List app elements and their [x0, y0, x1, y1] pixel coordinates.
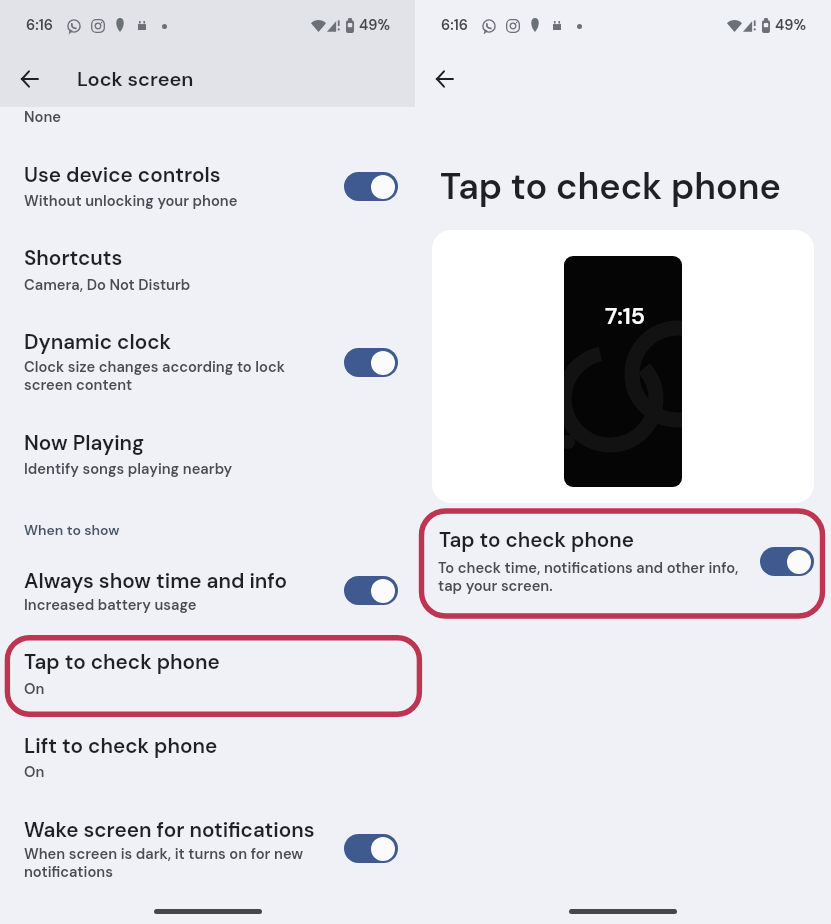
- button[interactable]: Shortcuts: [0, 232, 415, 298]
- staticText: On: [24, 762, 45, 781]
- staticText: On: [24, 679, 45, 698]
- button[interactable]: Lift to check phone: [0, 720, 415, 786]
- button[interactable]: Tap to check phone: [418, 508, 827, 620]
- staticText: 6:16: [441, 16, 468, 35]
- button[interactable]: Tap to check phone: [0, 636, 415, 702]
- staticText: When screen is dark, it turns on for new…: [24, 844, 304, 881]
- button[interactable]: Toggle setting: [344, 834, 398, 863]
- button[interactable]: Dynamic clock: [0, 316, 415, 400]
- staticText: Without unlocking your phone: [24, 191, 238, 210]
- staticText: None: [24, 107, 61, 126]
- staticText: Tap to check phone: [24, 648, 220, 675]
- staticText: Camera, Do Not Disturb: [24, 275, 191, 294]
- button[interactable]: Now Playing: [0, 417, 415, 483]
- button[interactable]: Toggle setting: [760, 547, 814, 576]
- staticText: 49%: [359, 16, 391, 35]
- staticText: Wake screen for notifications: [24, 816, 315, 843]
- button[interactable]: Back: [8, 58, 50, 100]
- staticText: Shortcuts: [24, 244, 123, 271]
- button[interactable]: Back: [423, 58, 465, 100]
- staticText: Lift to check phone: [24, 732, 218, 759]
- staticText: 6:16: [26, 16, 53, 35]
- button[interactable]: Use device controls: [0, 149, 415, 215]
- staticText: Now Playing: [24, 429, 145, 456]
- staticText: Tap to check phone: [439, 527, 634, 554]
- staticText: Clock size changes according to lock scr…: [24, 357, 285, 394]
- staticText: Tap to check phone: [440, 163, 781, 210]
- button[interactable]: Always show time and info: [0, 555, 415, 619]
- staticText: Lock screen: [77, 66, 194, 92]
- staticText: Increased battery usage: [24, 595, 197, 614]
- staticText: Dynamic clock: [24, 328, 172, 355]
- staticText: 7:15: [605, 301, 646, 331]
- button[interactable]: Toggle setting: [344, 348, 398, 377]
- button[interactable]: Toggle setting: [344, 576, 398, 605]
- staticText: When to show: [24, 521, 120, 539]
- button[interactable]: Wake screen for notifications: [0, 804, 415, 888]
- staticText: To check time, notifications and other i…: [438, 558, 739, 595]
- staticText: Identify songs playing nearby: [24, 459, 233, 478]
- staticText: Always show time and info: [24, 567, 287, 594]
- staticText: Use device controls: [24, 161, 221, 188]
- button[interactable]: Toggle setting: [344, 172, 398, 201]
- staticText: 49%: [775, 16, 807, 35]
